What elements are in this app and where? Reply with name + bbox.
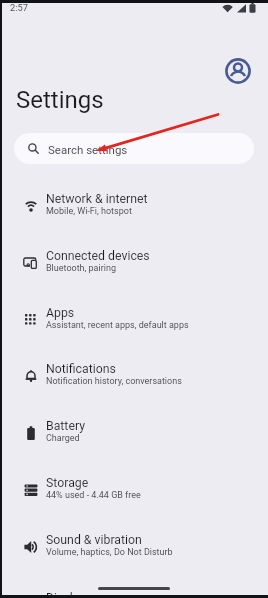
button[interactable]: Storage — [2, 468, 266, 525]
button[interactable]: Battery — [2, 411, 266, 468]
staticText: Notification history, conversations — [46, 376, 182, 387]
staticText: Sound & vibration — [46, 533, 142, 547]
staticText: Bluetooth, pairing — [46, 263, 116, 274]
button[interactable]: Search settings — [14, 133, 254, 164]
button[interactable]: Notifications — [2, 354, 266, 411]
staticText: Notifications — [46, 362, 116, 376]
staticText: Connected devices — [46, 249, 150, 263]
staticText: Volume, haptics, Do Not Disturb — [46, 547, 173, 558]
button[interactable]: Network & internet — [2, 184, 266, 241]
staticText: Assistant, recent apps, default apps — [46, 320, 189, 331]
staticText: Apps — [46, 306, 75, 320]
button[interactable]: Connected devices — [2, 241, 266, 298]
staticText: Mobile, Wi-Fi, hotspot — [46, 206, 132, 217]
button[interactable]: Sound & vibration — [2, 525, 266, 582]
staticText: Network & internet — [46, 192, 148, 206]
button[interactable] — [224, 57, 252, 85]
staticText: Search settings — [48, 143, 128, 156]
staticText: 2:57 — [10, 2, 28, 13]
staticText: Charged — [46, 433, 80, 444]
staticText: Display — [46, 591, 85, 598]
button[interactable]: Apps — [2, 298, 266, 355]
staticText: Settings — [16, 86, 104, 114]
staticText: Storage — [46, 476, 89, 490]
staticText: Battery — [46, 419, 86, 433]
staticText: 44% used - 4.44 GB free — [46, 490, 141, 501]
